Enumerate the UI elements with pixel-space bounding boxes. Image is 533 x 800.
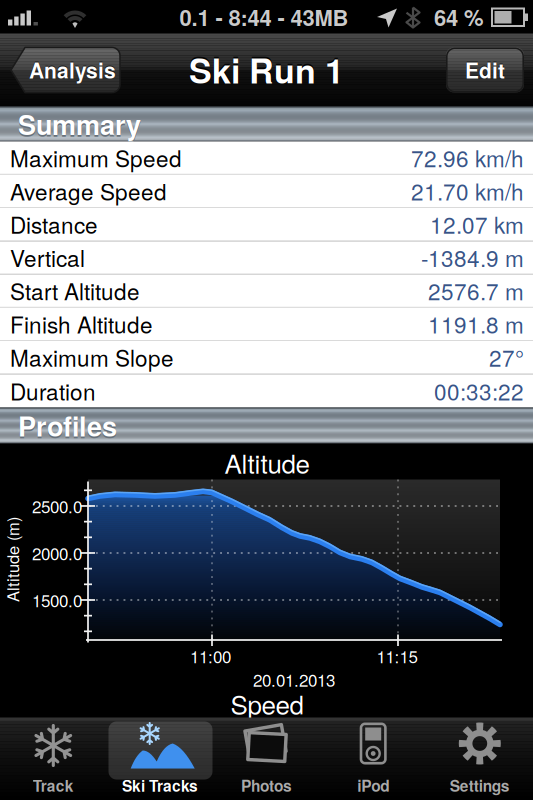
staticText: Settings bbox=[450, 774, 510, 796]
staticText: -1384.9 m bbox=[421, 241, 524, 273]
staticText: Summary bbox=[18, 105, 141, 143]
staticText: 2500.0 bbox=[32, 494, 82, 518]
staticText: Profiles bbox=[18, 406, 117, 445]
staticText: 20.01.2013 bbox=[253, 667, 335, 692]
staticText: 21.70 km/h bbox=[411, 175, 524, 207]
button[interactable]: Track bbox=[0, 717, 107, 799]
staticText: 00:33:22 bbox=[434, 375, 524, 407]
staticText: Average Speed bbox=[10, 175, 167, 207]
staticText: 2000.0 bbox=[32, 541, 82, 565]
staticText: Track bbox=[33, 774, 74, 796]
staticText: Duration bbox=[10, 375, 96, 407]
button[interactable]: Edit bbox=[446, 47, 524, 92]
staticText: Altitude bbox=[224, 444, 309, 481]
staticText: Start Altitude bbox=[10, 274, 140, 307]
staticText: Ski Tracks bbox=[122, 774, 198, 796]
button[interactable]: Ski Tracks bbox=[107, 717, 213, 799]
staticText: Vertical bbox=[10, 241, 85, 273]
staticText: Photos bbox=[241, 774, 292, 796]
staticText: Analysis bbox=[29, 54, 116, 84]
staticText: iPod bbox=[357, 774, 389, 796]
button[interactable]: iPod bbox=[320, 717, 426, 799]
staticText: Distance bbox=[10, 208, 98, 240]
staticText: Finish Altitude bbox=[10, 308, 153, 340]
staticText: 27° bbox=[489, 341, 524, 373]
staticText: Summary bbox=[18, 106, 141, 145]
staticText: 1500.0 bbox=[32, 588, 82, 612]
staticText: Speed bbox=[230, 685, 303, 722]
staticText: 0.1 - 8:44 - 43MB bbox=[179, 1, 348, 33]
staticText: 64 % bbox=[434, 1, 484, 33]
staticText: Maximum Slope bbox=[10, 341, 174, 373]
staticText: 72.96 km/h bbox=[411, 141, 524, 174]
staticText: Ski Run 1 bbox=[189, 44, 344, 92]
staticText: Edit bbox=[465, 55, 505, 85]
staticText: Altitude (m) bbox=[0, 548, 54, 571]
staticText: 11:15 bbox=[376, 644, 417, 668]
staticText: 11:00 bbox=[190, 644, 231, 668]
button[interactable]: Back to Analysis bbox=[10, 46, 121, 93]
staticText: Edit bbox=[465, 54, 505, 84]
staticText: Ski Run 1 bbox=[189, 45, 344, 94]
staticText: 2576.7 m bbox=[428, 274, 524, 307]
staticText: 1191.8 m bbox=[428, 308, 524, 340]
button[interactable]: Photos bbox=[213, 717, 320, 799]
staticText: Maximum Speed bbox=[10, 141, 182, 174]
staticText: Profiles bbox=[18, 408, 117, 446]
staticText: Analysis bbox=[29, 55, 116, 85]
button[interactable]: Settings bbox=[426, 717, 533, 799]
staticText: 12.07 km bbox=[430, 208, 524, 240]
